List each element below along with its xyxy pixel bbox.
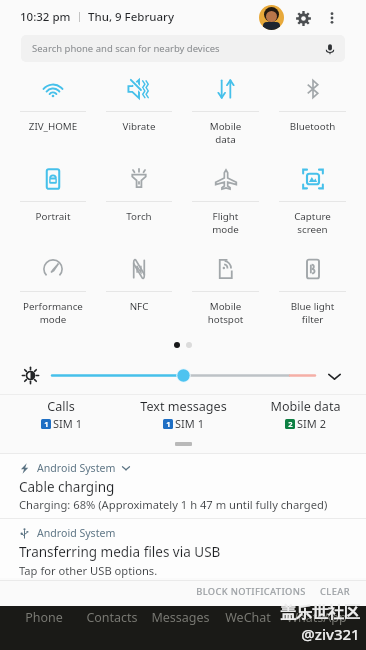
button[interactable]: Portrait: [10, 160, 96, 250]
staticText: 1: [166, 419, 171, 429]
button[interactable]: Expand: [324, 366, 344, 386]
staticText: Bluetooth: [269, 120, 356, 133]
button[interactable]: Mobile data: [244, 395, 366, 433]
button[interactable]: WeChat: [214, 609, 282, 626]
staticText: NFC: [96, 300, 182, 313]
button[interactable]: Vibrate: [96, 70, 182, 160]
staticText: Vibrate: [96, 120, 182, 133]
staticText: BLOCK NOTIFICATIONS: [196, 585, 306, 598]
button[interactable]: WhatsApp: [282, 609, 350, 626]
button[interactable]: Text messages: [122, 395, 244, 433]
staticText: Mobile hotspot: [182, 300, 269, 326]
button[interactable]: Messages: [146, 609, 214, 626]
staticText: WhatsApp: [286, 609, 347, 626]
button[interactable]: Bluetooth: [269, 70, 356, 160]
button[interactable]: More options: [322, 8, 342, 28]
button[interactable]: Calls: [0, 395, 122, 433]
staticText: Text messages: [140, 398, 227, 415]
staticText: Flight mode: [182, 210, 269, 236]
button[interactable]: NFC: [96, 250, 182, 340]
staticText: Mobile data: [270, 398, 341, 415]
button[interactable]: CLEAR: [316, 582, 354, 601]
staticText: Torch: [96, 210, 182, 223]
staticText: WeChat: [225, 609, 271, 626]
staticText: SIM 2: [297, 416, 326, 431]
staticText: Phone: [25, 609, 63, 626]
button[interactable]: Torch: [96, 160, 182, 250]
button[interactable]: Blue light filter: [269, 250, 356, 340]
staticText: Tap for other USB options.: [19, 563, 158, 578]
button[interactable]: Mobile data: [182, 70, 269, 160]
staticText: Blue light filter: [269, 300, 356, 326]
staticText: Search phone and scan for nearby devices: [32, 42, 220, 55]
staticText: Portrait: [10, 210, 96, 223]
staticText: Transferring media files via USB: [19, 543, 221, 561]
button[interactable]: Performance mode: [10, 250, 96, 340]
staticText: 2: [288, 419, 293, 429]
staticText: Performance mode: [10, 300, 96, 326]
staticText: Thu, 9 February: [88, 9, 174, 25]
staticText: Messages: [151, 609, 210, 626]
button[interactable]: [0, 363, 366, 388]
button[interactable]: Flight mode: [182, 160, 269, 250]
button[interactable]: Android System: [0, 519, 366, 578]
button[interactable]: Profile: [259, 5, 284, 30]
button[interactable]: BLOCK NOTIFICATIONS: [192, 582, 310, 601]
button[interactable]: Phone: [10, 609, 78, 626]
staticText: SIM 1: [175, 416, 204, 431]
staticText: Capture screen: [269, 210, 356, 236]
staticText: Cable charging: [19, 478, 115, 496]
staticText: @ziv321: [301, 624, 360, 644]
staticText: Calls: [47, 398, 75, 415]
staticText: SIM 1: [53, 416, 82, 431]
button[interactable]: Android System: [0, 454, 366, 518]
staticText: CLEAR: [320, 585, 350, 598]
staticText: 盖乐世社区: [280, 603, 360, 623]
button[interactable]: Mobile hotspot: [182, 250, 269, 340]
button[interactable]: ZIV_HOME: [10, 70, 96, 160]
staticText: Contacts: [86, 609, 138, 626]
button[interactable]: Contacts: [78, 609, 146, 626]
staticText: Charging: 68% (Approximately 1 h 47 m un…: [19, 497, 328, 512]
staticText: Mobile data: [182, 120, 269, 146]
button[interactable]: Search phone and scan for nearby devices: [21, 35, 345, 62]
button[interactable]: Capture screen: [269, 160, 356, 250]
staticText: 1: [44, 419, 49, 429]
staticText: 10:32 pm: [20, 9, 71, 25]
staticText: ZIV_HOME: [10, 120, 96, 133]
button[interactable]: Settings: [292, 7, 314, 29]
staticText: Android System: [37, 526, 116, 540]
staticText: Android System: [37, 461, 116, 475]
